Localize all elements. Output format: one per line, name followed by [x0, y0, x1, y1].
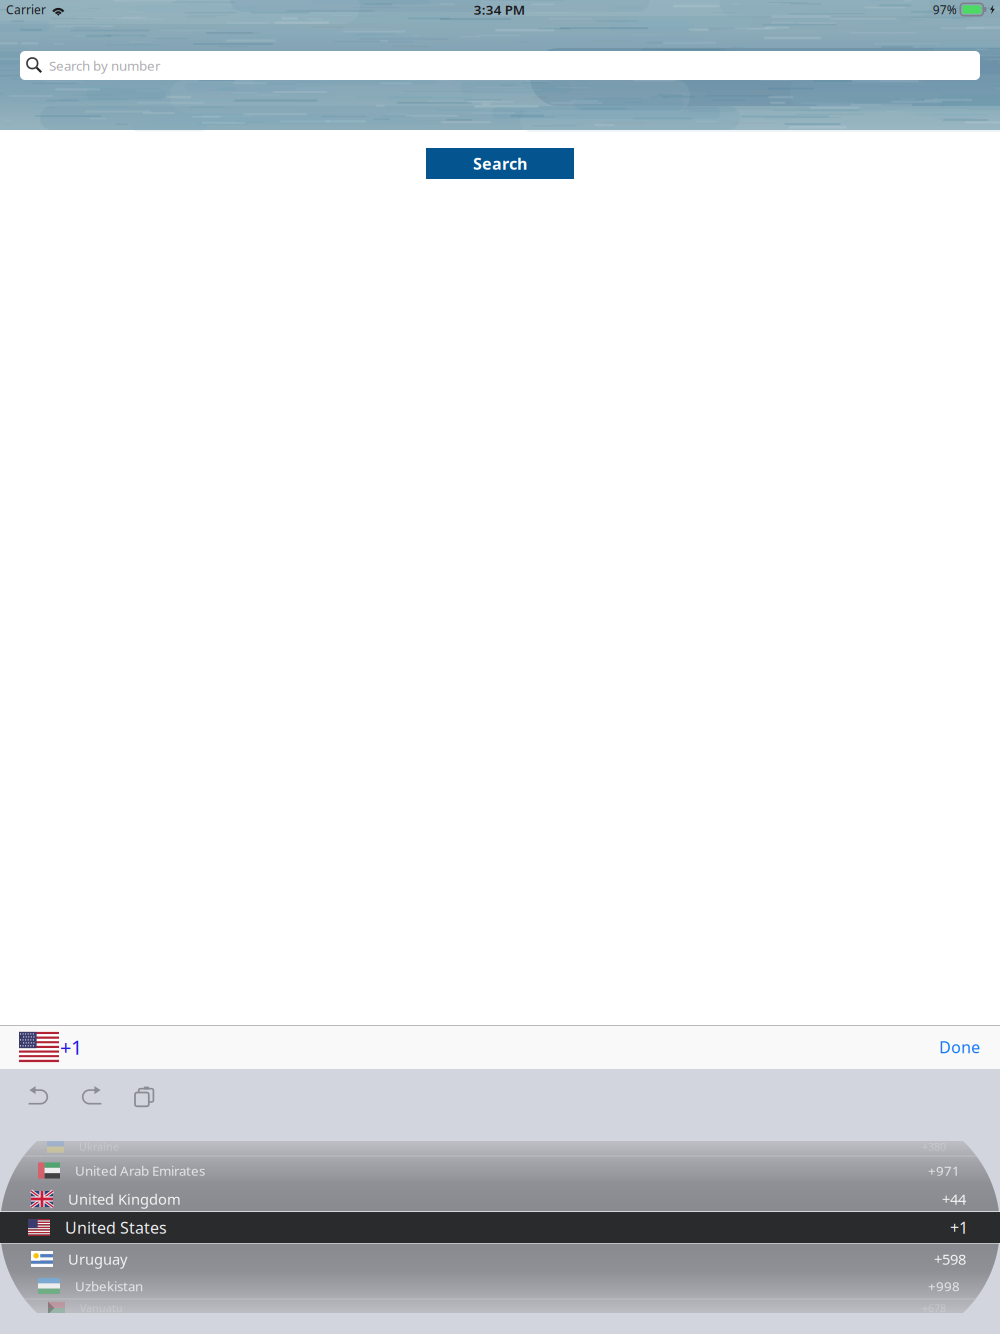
staticText: United Kingdom: [68, 1189, 181, 1209]
staticText: United Arab Emirates: [75, 1162, 205, 1179]
staticText: +1: [60, 1034, 82, 1060]
button[interactable]: United States: [0, 1212, 1000, 1243]
staticText: Carrier: [6, 1, 46, 17]
staticText: United States: [65, 1217, 167, 1238]
button[interactable]: Search by number: [20, 51, 980, 80]
button[interactable]: Paste: [117, 1080, 169, 1114]
staticText: Uruguay: [68, 1249, 127, 1269]
staticText: Uzbekistan: [75, 1277, 143, 1295]
button[interactable]: +1: [0, 1025, 98, 1069]
button[interactable]: Redo: [65, 1080, 117, 1114]
staticText: Search: [473, 153, 527, 174]
staticText: 97%: [933, 1, 957, 17]
button[interactable]: Search: [426, 148, 574, 179]
staticText: +598: [934, 1249, 966, 1269]
staticText: Search by number: [49, 57, 161, 74]
staticText: +971: [928, 1162, 960, 1179]
button[interactable]: Uzbekistan: [0, 1273, 1000, 1298]
button[interactable]: Done: [919, 1025, 1000, 1069]
staticText: +998: [928, 1277, 960, 1295]
button[interactable]: United Arab Emirates: [0, 1156, 1000, 1184]
staticText: +44: [942, 1189, 966, 1209]
staticText: +1: [950, 1217, 968, 1238]
button[interactable]: United Kingdom: [0, 1184, 1000, 1213]
button[interactable]: Undo: [13, 1080, 65, 1114]
button[interactable]: Ukraine: [0, 1137, 1000, 1155]
staticText: Vanuatu: [80, 1301, 123, 1315]
staticText: +678: [922, 1301, 946, 1315]
staticText: Ukraine: [79, 1139, 119, 1154]
staticText: +380: [922, 1139, 946, 1154]
button[interactable]: Vanuatu: [0, 1299, 1000, 1316]
button[interactable]: Uruguay: [0, 1244, 1000, 1273]
staticText: 3:34 PM: [474, 0, 525, 19]
staticText: Done: [939, 1036, 980, 1058]
